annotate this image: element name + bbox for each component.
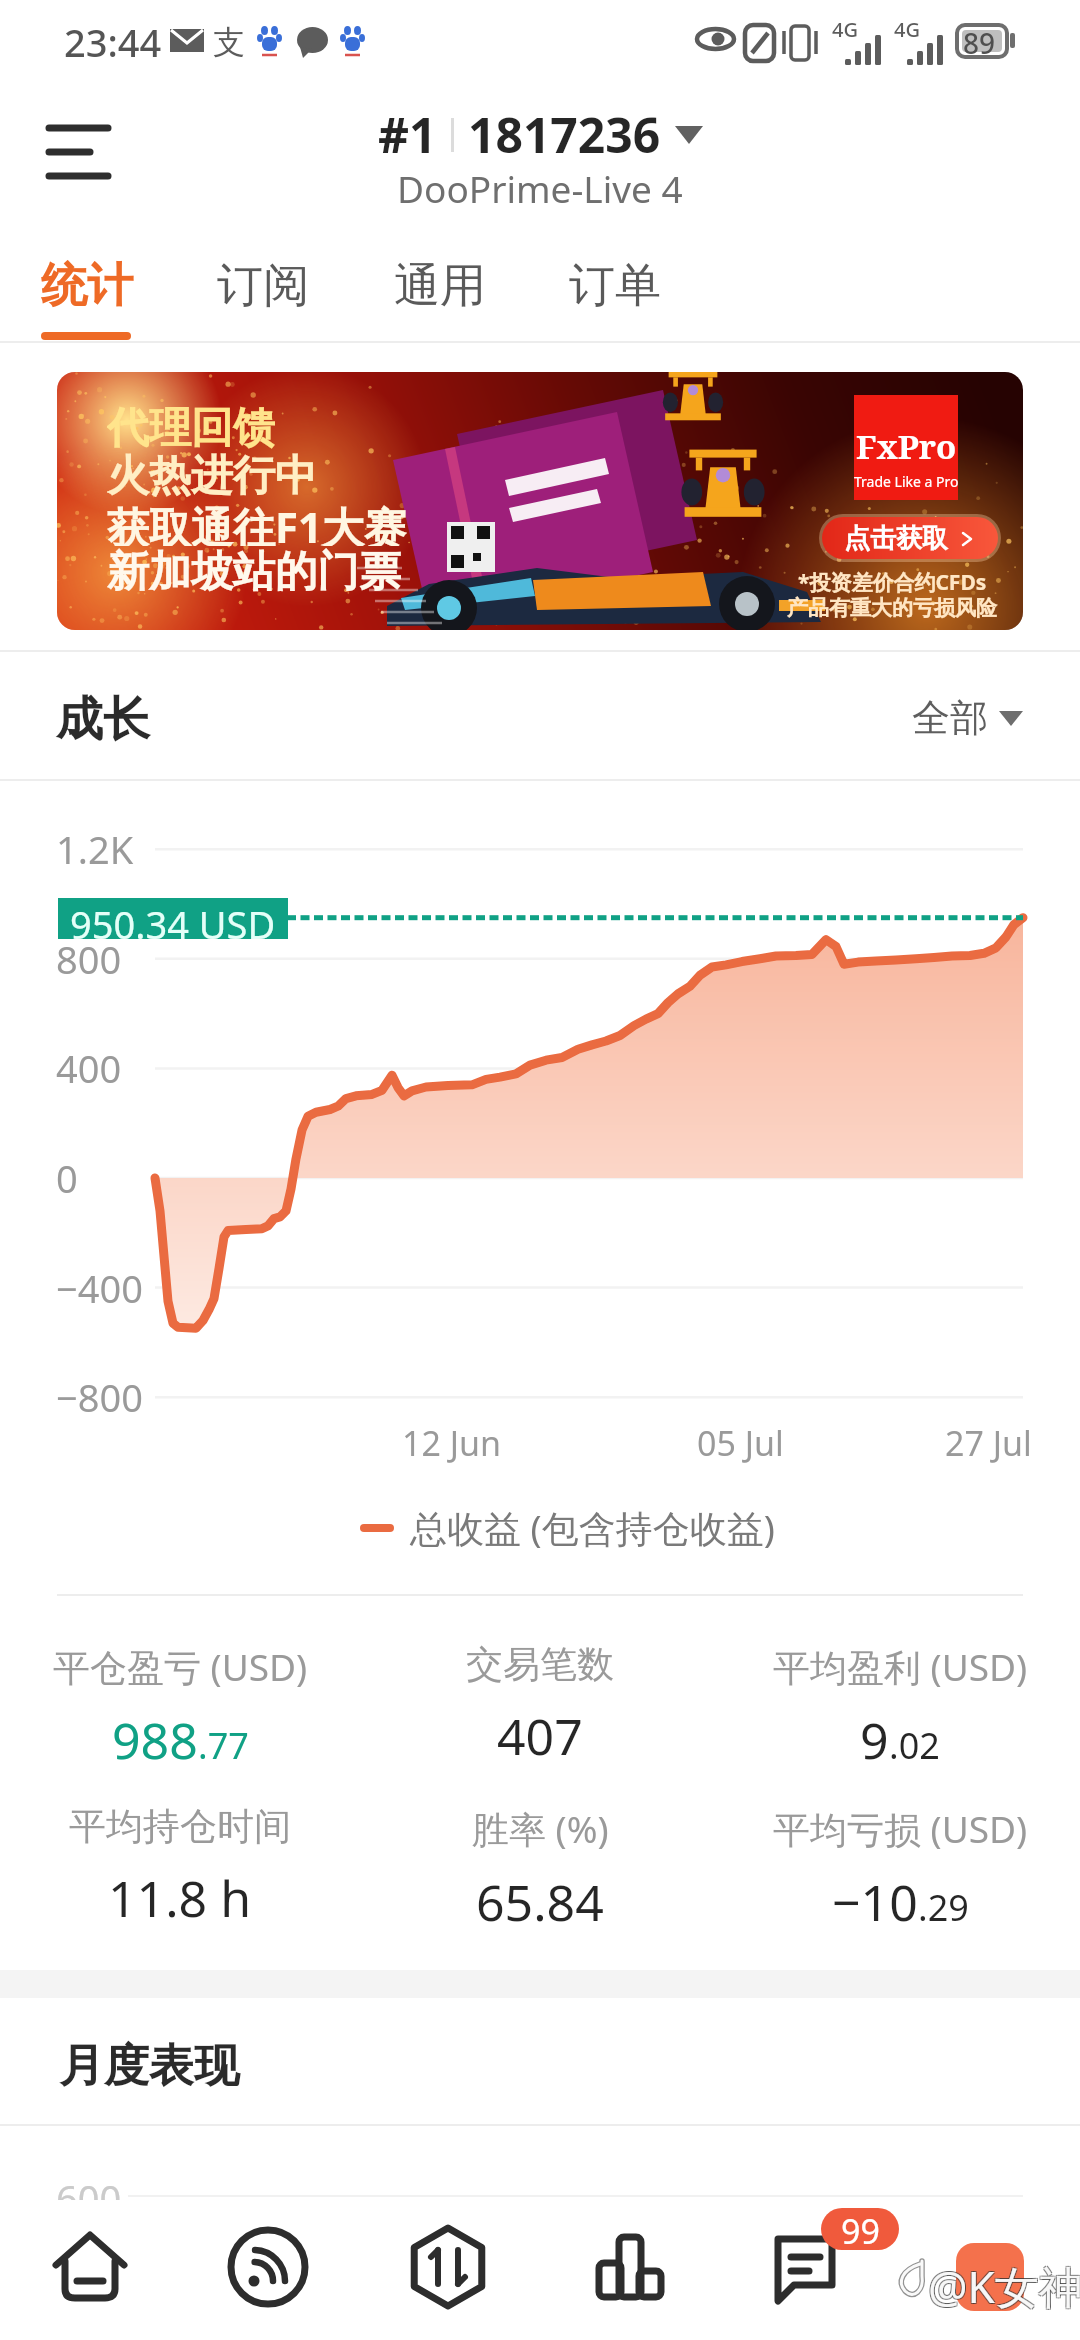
staticText: 订阅 — [217, 257, 309, 315]
staticText: @K女神 — [929, 2257, 1080, 2317]
button[interactable]: Messages — [753, 2212, 863, 2322]
staticText: 全部 — [912, 694, 988, 742]
staticText: 支 — [213, 22, 245, 62]
button[interactable]: Home — [35, 2212, 145, 2322]
staticText: 12 Jun — [402, 1420, 502, 1466]
staticText: 点击获取 — [844, 522, 948, 555]
staticText: −10 — [832, 1868, 918, 1936]
staticText: 950.34 USD — [70, 898, 276, 939]
button[interactable]: Mine — [956, 2243, 1024, 2311]
staticText: 平均持仓时间 — [69, 1803, 291, 1850]
staticText: −400 — [56, 1262, 143, 1314]
staticText: .02 — [889, 1721, 940, 1770]
staticText: 平均盈利 (USD) — [773, 1641, 1028, 1692]
staticText: 988 — [112, 1706, 198, 1774]
staticText: 产品有重大的亏损风险 — [787, 595, 997, 622]
staticText: @K女神 — [929, 2255, 1080, 2315]
staticText: Trade Like a Pro — [854, 472, 958, 491]
staticText: .77 — [198, 1721, 249, 1770]
button[interactable]: Statistics — [573, 2212, 683, 2322]
staticText: −800 — [56, 1371, 143, 1423]
staticText: 600 — [56, 2172, 122, 2224]
staticText: 获取通往F1大赛 — [107, 498, 407, 546]
staticText: @K女神 — [927, 2257, 1080, 2317]
button[interactable]: 全部 — [912, 694, 1023, 742]
staticText: 9 — [860, 1706, 889, 1774]
staticText: 交易笔数 — [466, 1641, 614, 1688]
button[interactable]: 代理回馈 — [57, 372, 1023, 630]
staticText: 总收益 (包含持仓收益) — [410, 1502, 775, 1553]
staticText: 4G — [894, 16, 920, 43]
button[interactable]: 统计 — [20, 244, 154, 340]
staticText: 通用 — [394, 257, 486, 315]
staticText: *投资差价合约CFDs — [798, 568, 987, 595]
staticText: 4G — [832, 16, 858, 43]
staticText: 1817236 — [468, 102, 661, 167]
staticText: 99 — [841, 2208, 880, 2250]
button[interactable]: Trade — [393, 2212, 503, 2322]
staticText: 11.8 h — [108, 1864, 252, 1932]
button[interactable]: Signals — [213, 2212, 323, 2322]
staticText: 65.84 — [476, 1868, 604, 1936]
button[interactable]: 通用 — [373, 244, 507, 340]
staticText: 89 — [963, 24, 996, 62]
button[interactable]: Menu — [30, 98, 126, 194]
staticText: DooPrime-Live 4 — [397, 163, 683, 213]
staticText: 27 Jul — [945, 1420, 1032, 1466]
staticText: 407 — [497, 1702, 583, 1770]
button[interactable]: 点击获取 — [822, 517, 998, 559]
staticText: 订单 — [569, 257, 661, 315]
staticText: 05 Jul — [697, 1420, 784, 1466]
staticText: @K女神 — [927, 2255, 1080, 2315]
staticText: 月度表现 — [59, 2038, 239, 2095]
staticText: 胜率 (%) — [472, 1803, 609, 1854]
button[interactable]: 订阅 — [196, 244, 330, 340]
staticText: 平仓盈亏 (USD) — [53, 1641, 308, 1692]
staticText: 代理回馈 — [107, 402, 275, 450]
staticText: @K女神 — [928, 2256, 1080, 2316]
staticText: 800 — [56, 933, 122, 985]
staticText: FxPro — [856, 424, 957, 469]
staticText: 平均亏损 (USD) — [773, 1803, 1028, 1854]
staticText: 1.2K — [56, 823, 134, 875]
staticText: 火热进行中 — [107, 450, 317, 498]
staticText: 成长 — [56, 690, 150, 749]
staticText: 0 — [56, 1152, 78, 1204]
staticText: 新加坡站的门票 — [107, 546, 401, 594]
button[interactable]: 订单 — [548, 244, 682, 340]
staticText: 400 — [56, 1042, 122, 1094]
staticText: 23:44 — [64, 16, 162, 68]
staticText: .29 — [918, 1883, 969, 1932]
staticText: #1 — [378, 102, 437, 167]
staticText: 统计 — [41, 257, 133, 315]
